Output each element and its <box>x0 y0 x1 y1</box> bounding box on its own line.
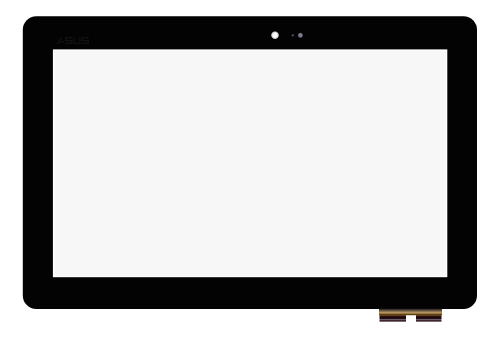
button[interactable]: ASUS tablet touch screen digitizer panel <box>0 0 500 340</box>
